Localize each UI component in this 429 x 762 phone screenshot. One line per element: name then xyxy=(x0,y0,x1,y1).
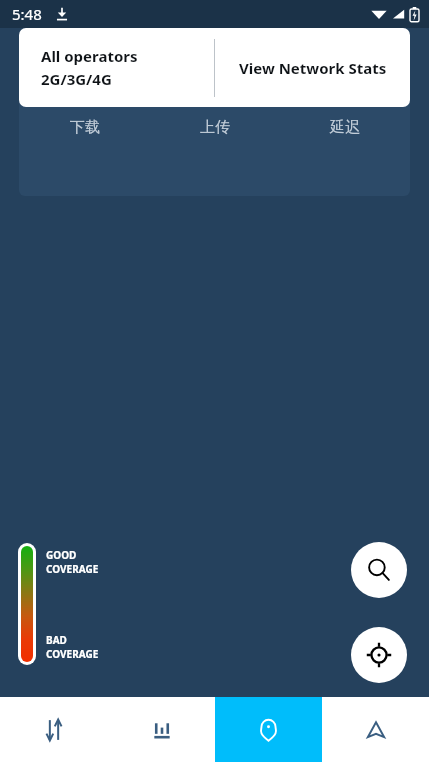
staticText: COVERAGE xyxy=(46,562,99,576)
button[interactable]: 上传 xyxy=(150,118,280,137)
button[interactable]: Search xyxy=(351,542,407,598)
staticText: View Network Stats xyxy=(239,58,387,78)
button[interactable]: View Network Stats xyxy=(215,28,410,107)
staticText: 延迟 xyxy=(330,118,360,137)
staticText: BAD xyxy=(46,633,67,647)
button[interactable]: Coverage map xyxy=(215,697,322,762)
staticText: 下载 xyxy=(70,118,100,137)
button[interactable]: My location xyxy=(351,627,407,683)
staticText: GOOD xyxy=(46,548,77,562)
button[interactable]: All operators xyxy=(19,28,214,107)
staticText: 2G/3G/4G xyxy=(41,69,112,89)
button[interactable]: 下载 xyxy=(19,118,150,137)
button[interactable]: Speed test xyxy=(0,697,108,762)
staticText: All operators xyxy=(41,46,138,66)
staticText: 5:48 xyxy=(12,4,42,24)
button[interactable]: 延迟 xyxy=(280,118,410,137)
staticText: 上传 xyxy=(200,118,230,137)
button[interactable]: Statistics xyxy=(108,697,215,762)
staticText: COVERAGE xyxy=(46,647,99,661)
button[interactable]: Navigate xyxy=(322,697,429,762)
